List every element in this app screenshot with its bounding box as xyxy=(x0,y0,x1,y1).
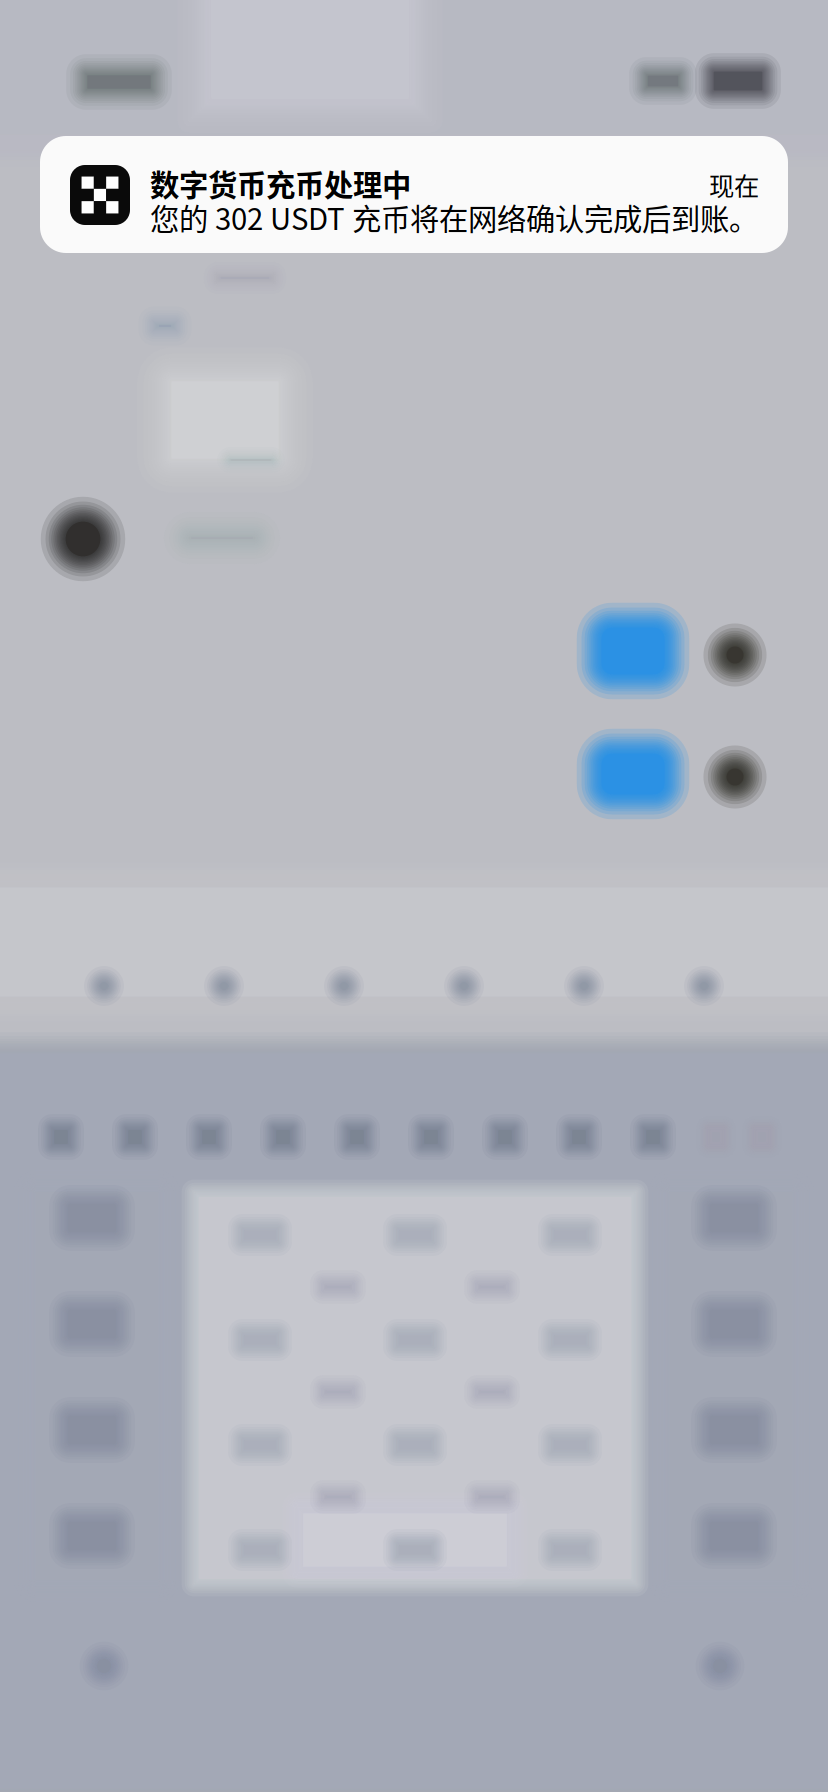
staticText: 您的 302 USDT 充币将在网络确认完成后到账。 xyxy=(150,196,758,238)
staticText: 现在 xyxy=(709,166,759,203)
button[interactable]: 数字货币充币处理中 xyxy=(40,136,788,253)
staticText: 数字货币充币处理中 xyxy=(150,162,411,204)
